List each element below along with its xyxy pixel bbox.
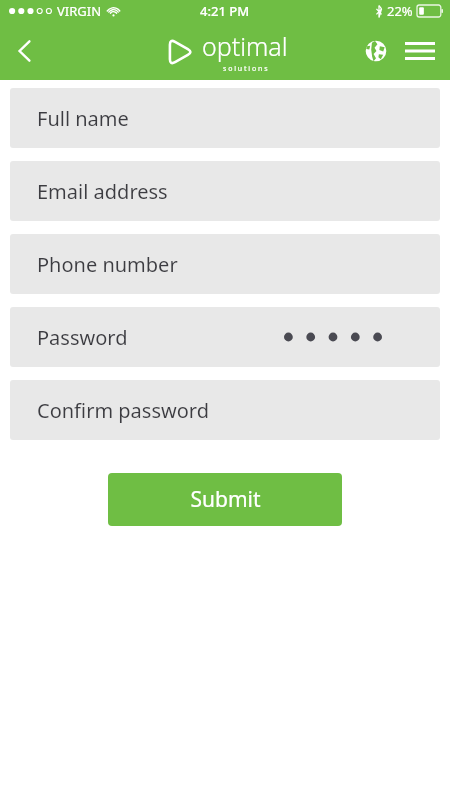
staticText: Submit [190, 485, 261, 514]
staticText: 22% [387, 2, 413, 20]
button[interactable]: Full name [10, 88, 440, 148]
staticText: 4:21 PM [200, 2, 250, 20]
button[interactable]: Back [0, 27, 48, 75]
staticText: Full name [37, 105, 129, 132]
staticText: Confirm password [37, 397, 209, 424]
staticText: Phone number [37, 251, 178, 278]
staticText: Password [37, 324, 128, 351]
staticText: Email address [37, 178, 168, 205]
button[interactable]: Confirm password [10, 380, 440, 440]
button[interactable]: Email address [10, 161, 440, 221]
staticText: optimal [202, 29, 288, 63]
button[interactable]: Password [10, 307, 440, 367]
staticText: VIRGIN [57, 2, 102, 20]
button[interactable]: Submit [108, 473, 342, 526]
button[interactable]: Language [356, 31, 396, 71]
button[interactable]: Phone number [10, 234, 440, 294]
button[interactable]: Menu [398, 29, 442, 73]
staticText: s o l u t i o n s [223, 64, 268, 74]
